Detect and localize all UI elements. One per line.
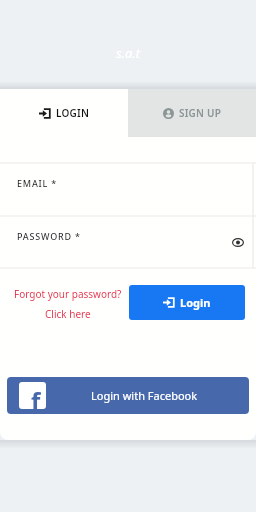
- button[interactable]: PASSWORD *: [0, 216, 256, 268]
- staticText: Login with Facebook: [91, 388, 198, 403]
- staticText: Forgot your password?: [14, 287, 122, 301]
- staticText: Login: [180, 295, 211, 310]
- staticText: f: [31, 384, 41, 409]
- button[interactable]: [232, 238, 244, 247]
- button[interactable]: SIGN UP: [128, 89, 256, 137]
- staticText: SIGN UP: [179, 106, 222, 120]
- button[interactable]: Login: [129, 285, 245, 320]
- button[interactable]: Forgot your password?: [8, 287, 128, 321]
- staticText: s.a.t: [116, 44, 140, 62]
- staticText: Click here: [45, 307, 91, 321]
- button[interactable]: LOGIN: [0, 89, 128, 137]
- staticText: EMAIL *: [17, 177, 58, 189]
- button[interactable]: EMAIL *: [0, 163, 256, 216]
- staticText: PASSWORD *: [17, 230, 81, 242]
- staticText: LOGIN: [56, 106, 90, 120]
- button[interactable]: f: [7, 377, 249, 414]
